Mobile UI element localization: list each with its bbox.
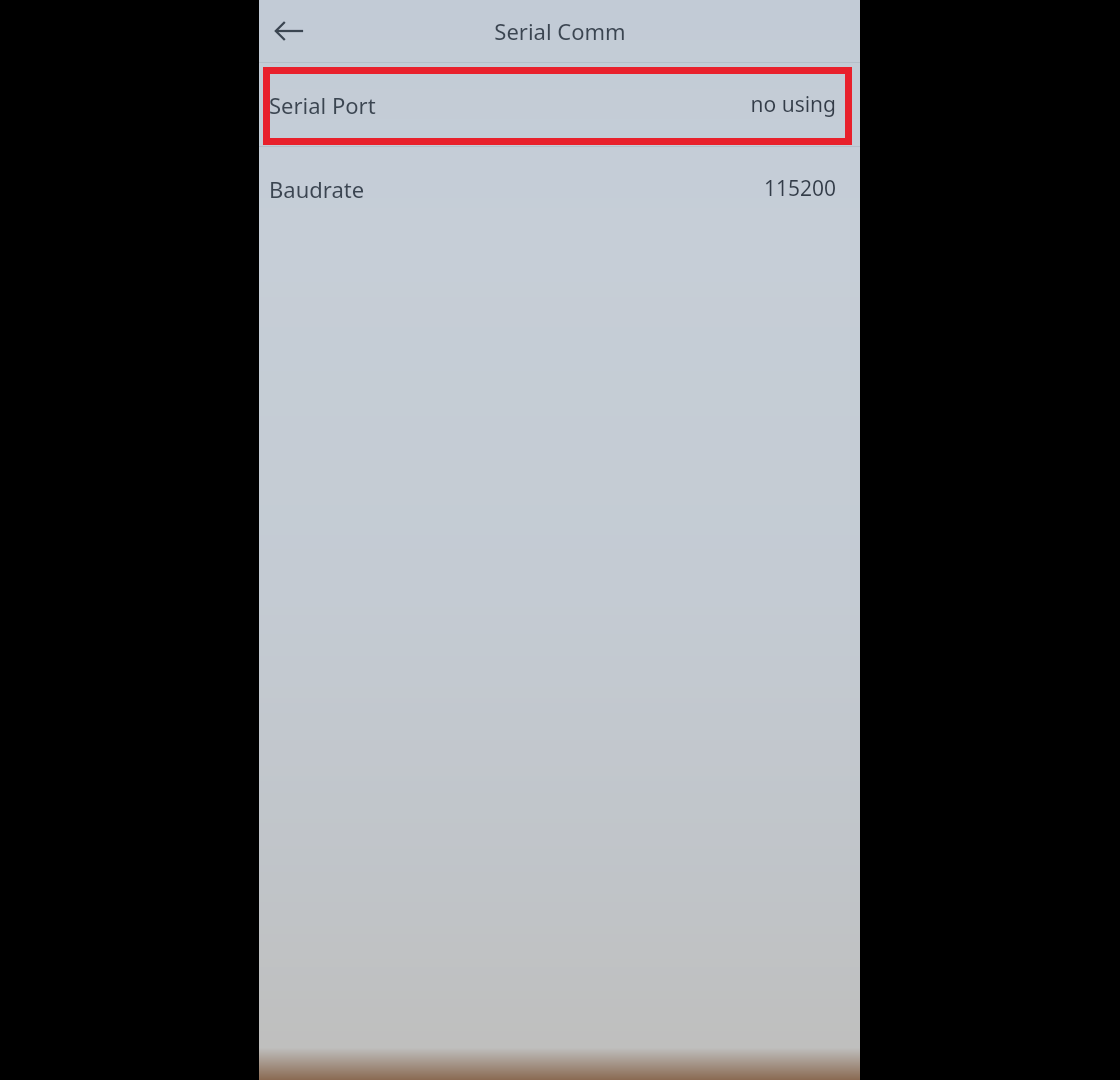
staticText: 115200 bbox=[763, 174, 836, 203]
staticText: Baudrate bbox=[269, 174, 365, 204]
staticText: no using bbox=[750, 90, 836, 119]
button[interactable]: Back bbox=[263, 5, 315, 57]
button[interactable]: Serial Port bbox=[259, 63, 860, 146]
staticText: Serial Comm bbox=[494, 16, 626, 46]
staticText: Serial Port bbox=[269, 90, 376, 120]
button[interactable]: Baudrate bbox=[259, 147, 860, 230]
